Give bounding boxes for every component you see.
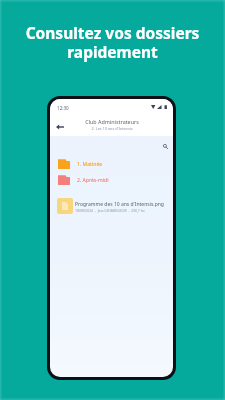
button[interactable]: 2. Après-midi	[50, 172, 173, 188]
staticText: 2. Les 10 ans d'Intensis	[91, 126, 133, 131]
button[interactable]: 1. Matinée	[50, 156, 173, 172]
staticText: 12:30	[57, 105, 69, 111]
staticText: 18/08/2024 - Jess LEHARGUEUR - 230,7 ko	[75, 208, 145, 213]
button[interactable]: Search	[160, 141, 171, 152]
button[interactable]: Back	[54, 121, 65, 132]
staticText: Programme des 10 ans d'Intensis.png	[75, 201, 164, 208]
staticText: Club Administrateurs	[85, 118, 139, 125]
staticText: Consultez vos dossiers rapidement	[0, 22, 225, 62]
button[interactable]: Programme des 10 ans d'Intensis.png	[50, 198, 173, 219]
staticText: 2. Après-midi	[77, 177, 109, 184]
staticText: 1. Matinée	[77, 161, 103, 168]
